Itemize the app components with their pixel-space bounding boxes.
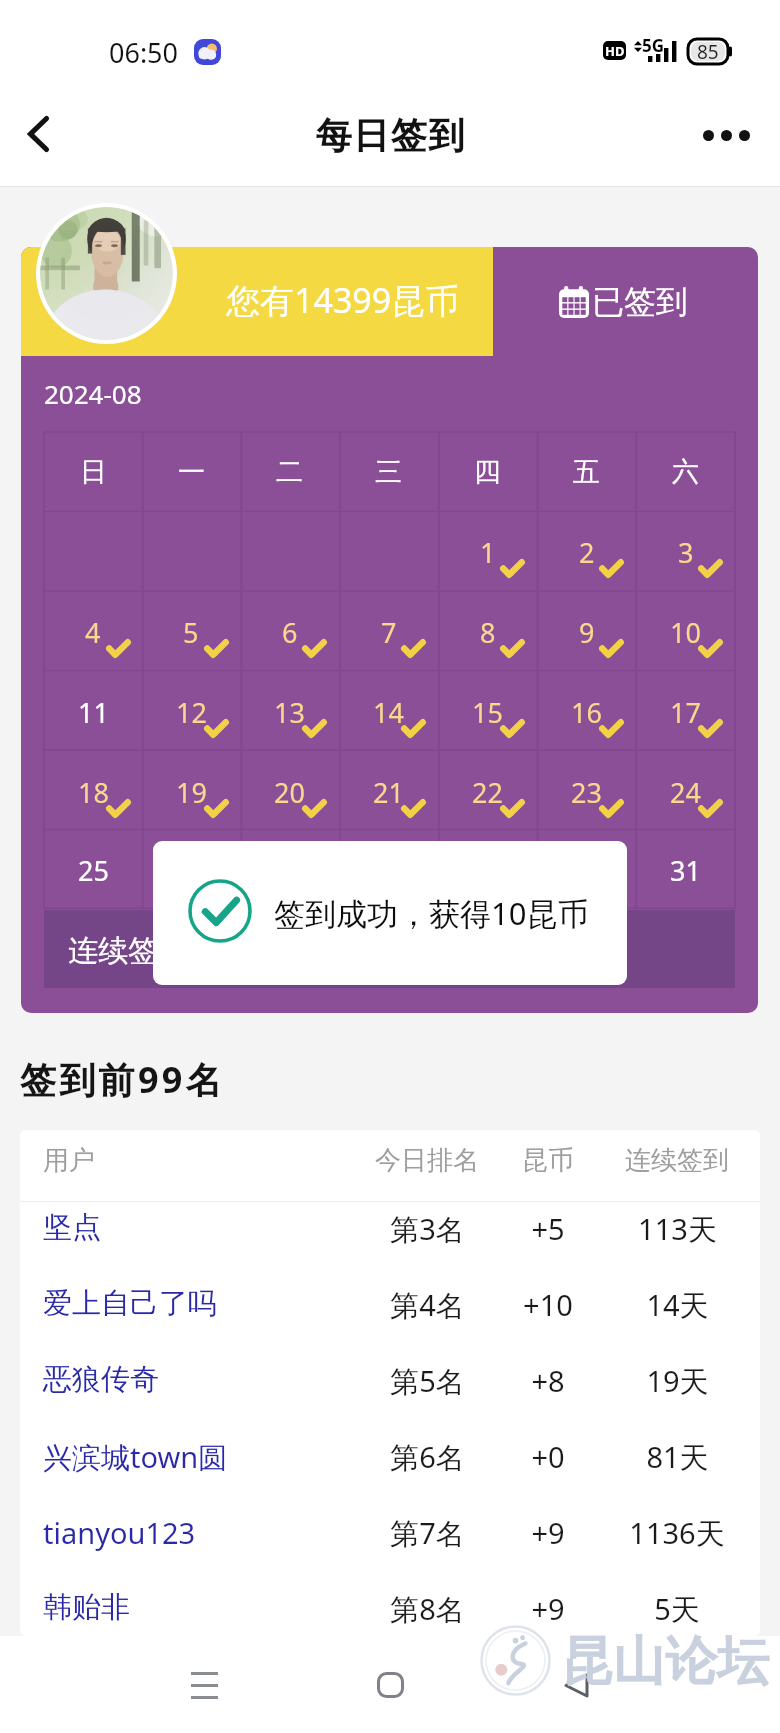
button[interactable]: 爱上自己了吗: [20, 1269, 760, 1345]
staticText: 81天: [646, 1437, 709, 1477]
staticText: 第7名: [390, 1513, 465, 1553]
staticText: 113天: [638, 1209, 717, 1249]
staticText: 11: [78, 694, 109, 731]
staticText: 三: [375, 455, 402, 489]
staticText: +0: [531, 1437, 565, 1476]
staticText: 恶狼传奇: [43, 1361, 159, 1398]
staticText: +8: [531, 1361, 565, 1400]
staticText: +5: [531, 1209, 565, 1248]
staticText: 6: [282, 614, 298, 651]
staticText: 坚点: [43, 1209, 101, 1246]
staticText: 22: [472, 774, 503, 811]
staticText: 连续签到: [625, 1144, 729, 1177]
staticText: 8: [480, 614, 496, 651]
staticText: HD: [605, 42, 625, 60]
staticText: 韩贻非: [43, 1589, 130, 1626]
staticText: tianyou123: [43, 1513, 196, 1552]
staticText: +10: [523, 1285, 573, 1324]
button[interactable]: Recent apps: [154, 1650, 254, 1720]
staticText: 2: [579, 534, 595, 571]
staticText: 15: [472, 694, 503, 731]
staticText: 06:50: [109, 34, 179, 71]
staticText: 用户: [43, 1144, 95, 1177]
staticText: 85: [697, 39, 719, 64]
staticText: 第3名: [390, 1209, 465, 1249]
staticText: 17: [670, 694, 701, 731]
staticText: 一: [178, 455, 205, 489]
button[interactable]: 恶狼传奇: [20, 1345, 760, 1421]
staticText: 昆币: [522, 1144, 574, 1177]
staticText: 二: [276, 455, 303, 489]
staticText: 第6名: [390, 1437, 465, 1477]
staticText: 兴滨城town圆: [43, 1437, 228, 1477]
staticText: 9: [579, 614, 595, 651]
staticText: 四: [474, 455, 501, 489]
staticText: 14天: [646, 1285, 709, 1325]
staticText: 5天: [654, 1589, 700, 1629]
button[interactable]: 坚点: [20, 1193, 760, 1269]
staticText: 昆山论坛: [561, 1629, 769, 1695]
staticText: 31: [670, 852, 701, 889]
button[interactable]: 已签到: [559, 273, 688, 331]
button[interactable]: 韩贻非: [20, 1573, 760, 1636]
staticText: 20: [274, 774, 305, 811]
staticText: 5G: [642, 34, 665, 57]
staticText: 7: [381, 614, 397, 651]
staticText: 25: [78, 852, 109, 889]
staticText: 您有14399昆币: [226, 277, 460, 323]
staticText: 签到成功，获得10昆币: [274, 892, 589, 934]
staticText: 18: [78, 774, 109, 811]
staticText: 19天: [646, 1361, 709, 1401]
staticText: 14: [373, 694, 404, 731]
button[interactable]: Back: [526, 1650, 626, 1720]
staticText: 已签到: [592, 282, 688, 322]
button[interactable]: Back: [8, 104, 68, 164]
staticText: 连续签到 113 天: [68, 929, 286, 970]
staticText: 10: [670, 614, 701, 651]
staticText: 1136天: [629, 1513, 725, 1553]
staticText: 2024-08: [44, 376, 142, 411]
staticText: 23: [571, 774, 602, 811]
staticText: 五: [573, 455, 600, 489]
staticText: 签到前99名: [20, 1055, 225, 1104]
button[interactable]: tianyou123: [20, 1497, 760, 1573]
button[interactable]: Home: [340, 1650, 440, 1720]
staticText: 每日签到: [315, 113, 465, 158]
staticText: 日: [80, 455, 107, 489]
staticText: 第8名: [390, 1589, 465, 1629]
staticText: +9: [531, 1513, 565, 1552]
staticText: 19: [176, 774, 207, 811]
staticText: 16: [571, 694, 602, 731]
staticText: 1: [480, 534, 496, 571]
staticText: 12: [176, 694, 207, 731]
button[interactable]: 兴滨城town圆: [20, 1421, 760, 1497]
staticText: 第5名: [390, 1361, 465, 1401]
staticText: 5: [183, 614, 199, 651]
staticText: 爱上自己了吗: [43, 1285, 217, 1322]
button[interactable]: More options: [694, 110, 758, 160]
staticText: 21: [373, 774, 404, 811]
staticText: 24: [670, 774, 701, 811]
staticText: 六: [672, 455, 699, 489]
staticText: 第4名: [390, 1285, 465, 1325]
staticText: 4: [85, 614, 101, 651]
staticText: 13: [274, 694, 305, 731]
staticText: 26: [176, 852, 207, 889]
staticText: 3: [678, 534, 694, 571]
staticText: 今日排名: [375, 1144, 479, 1177]
button[interactable]: Avatar: [40, 207, 173, 340]
staticText: +9: [531, 1589, 565, 1628]
